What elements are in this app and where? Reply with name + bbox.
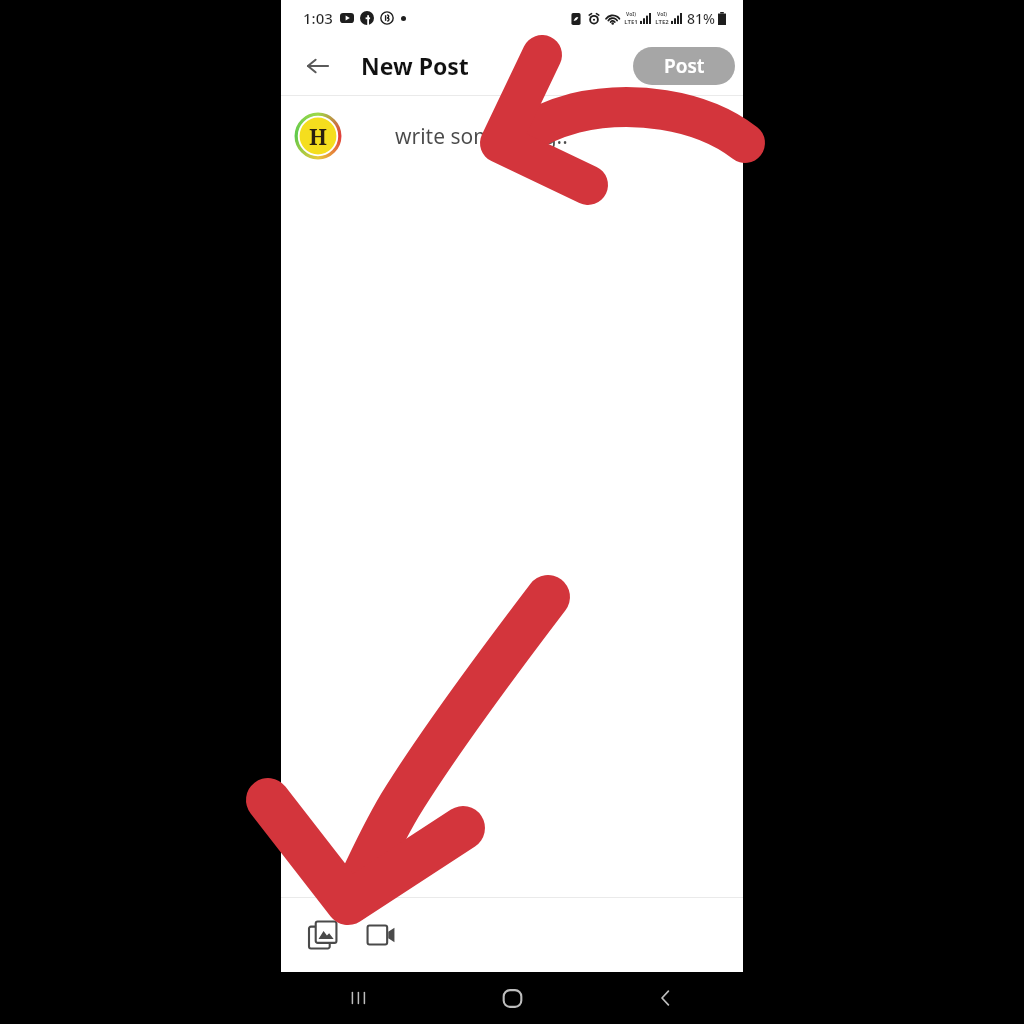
- staticText: VoI): [657, 11, 667, 18]
- staticText: 81%: [687, 9, 715, 28]
- button[interactable]: H: [281, 96, 743, 176]
- staticText: VoI): [626, 11, 636, 18]
- button[interactable]: Home: [435, 972, 589, 1024]
- button[interactable]: Recent apps: [281, 972, 435, 1024]
- staticText: New Post: [361, 50, 469, 81]
- button[interactable]: Back: [589, 972, 743, 1024]
- staticText: LTE2: [655, 18, 669, 26]
- button[interactable]: Add photo: [303, 915, 343, 955]
- staticText: LTE1: [624, 18, 638, 26]
- staticText: 1:03: [303, 8, 333, 28]
- staticText: write something..: [395, 122, 568, 151]
- button[interactable]: Add video: [361, 915, 401, 955]
- button[interactable]: Post: [633, 47, 735, 85]
- staticText: H: [309, 121, 328, 151]
- button[interactable]: Back: [297, 45, 339, 87]
- staticText: Post: [664, 53, 705, 79]
